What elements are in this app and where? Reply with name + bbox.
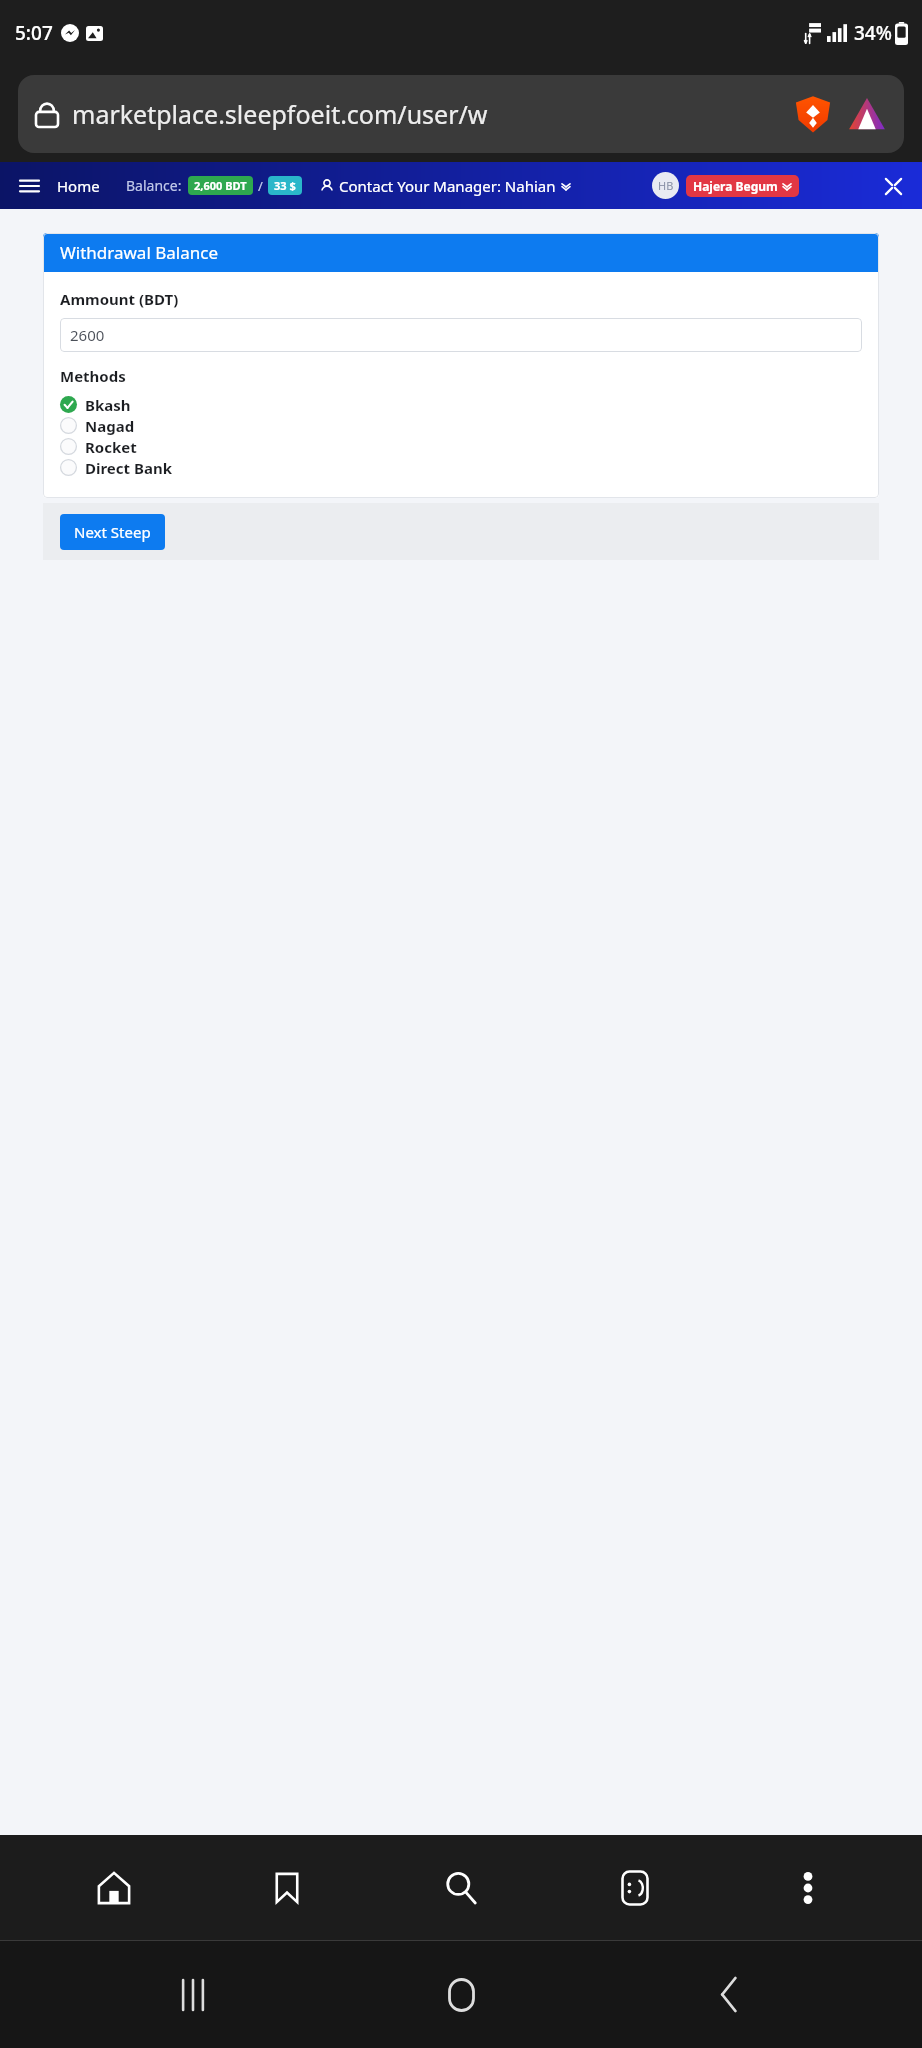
- staticText: Ammount (BDT): [60, 289, 179, 309]
- button[interactable]: Tabs: [575, 1835, 695, 1940]
- button[interactable]: HB: [652, 172, 679, 199]
- staticText: Nagad: [85, 416, 135, 436]
- staticText: Home: [57, 176, 100, 196]
- button[interactable]: Nagad: [60, 415, 862, 436]
- button[interactable]: Menu: [14, 171, 44, 201]
- staticText: 34%: [854, 20, 892, 46]
- staticText: Balance:: [126, 176, 182, 195]
- staticText: Bkash: [85, 395, 131, 415]
- button[interactable]: Bkash: [60, 394, 862, 415]
- other: Brave Shields: [794, 95, 832, 133]
- button[interactable]: Secure: [18, 75, 904, 153]
- button[interactable]: 2600: [60, 318, 862, 352]
- button[interactable]: Next Steep: [60, 514, 165, 550]
- button[interactable]: Bookmarks: [227, 1835, 347, 1940]
- button[interactable]: Contact Your Manager: Nahian: [320, 176, 571, 196]
- staticText: marketplace.sleepfoeit.com/user/w: [72, 97, 488, 131]
- button[interactable]: Rocket: [60, 436, 862, 457]
- button[interactable]: Balance:: [126, 176, 302, 195]
- button[interactable]: Recents: [118, 1941, 268, 2048]
- button[interactable]: Direct Bank: [60, 457, 862, 478]
- staticText: Contact Your Manager: Nahian: [339, 176, 556, 196]
- staticText: Next Steep: [74, 522, 151, 542]
- staticText: /: [258, 177, 263, 195]
- staticText: 33 $: [274, 178, 296, 193]
- button[interactable]: Fullscreen: [880, 173, 906, 199]
- staticText: 5:07: [15, 20, 53, 46]
- staticText: HB: [658, 178, 674, 193]
- button[interactable]: Back: [654, 1941, 804, 2048]
- button[interactable]: Home: [53, 172, 104, 200]
- other: Brave Rewards: [848, 95, 886, 133]
- button[interactable]: Home: [54, 1835, 174, 1940]
- staticText: 2600: [70, 325, 105, 345]
- staticText: Methods: [60, 366, 126, 386]
- staticText: 2,600 BDT: [194, 178, 247, 193]
- button[interactable]: More options: [748, 1835, 868, 1940]
- button[interactable]: Home: [386, 1941, 536, 2048]
- staticText: Rocket: [85, 437, 137, 457]
- button[interactable]: Search: [401, 1835, 521, 1940]
- staticText: Direct Bank: [85, 458, 172, 478]
- staticText: Withdrawal Balance: [60, 241, 218, 264]
- staticText: Hajera Begum: [693, 178, 778, 194]
- other: Secure: [36, 101, 58, 127]
- button[interactable]: Hajera Begum: [686, 175, 799, 197]
